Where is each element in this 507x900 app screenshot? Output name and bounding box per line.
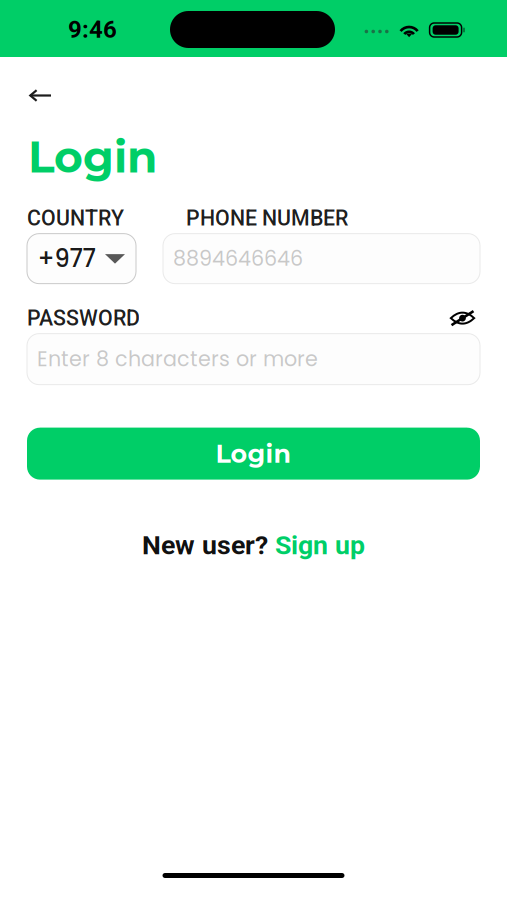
button[interactable]: Enter 8 characters or more [27,334,480,385]
button[interactable]: +977 [27,234,136,284]
staticText: COUNTRY [27,206,124,231]
button[interactable]: Sign up [275,530,365,561]
staticText: 8894646646 [173,244,303,273]
staticText: PHONE NUMBER [186,206,348,231]
staticText: Login [28,130,157,184]
staticText: 9:46 [68,15,117,43]
button[interactable]: Back [0,57,68,114]
staticText: Login [215,438,291,469]
staticText: PASSWORD [27,306,140,331]
staticText: +977 [37,242,95,275]
button[interactable]: Login [27,428,480,480]
staticText: New user? [142,530,275,561]
button[interactable]: Show password [445,307,480,329]
staticText: Enter 8 characters or more [37,345,318,374]
staticText: Sign up [275,530,365,561]
button[interactable]: 8894646646 [163,234,480,284]
